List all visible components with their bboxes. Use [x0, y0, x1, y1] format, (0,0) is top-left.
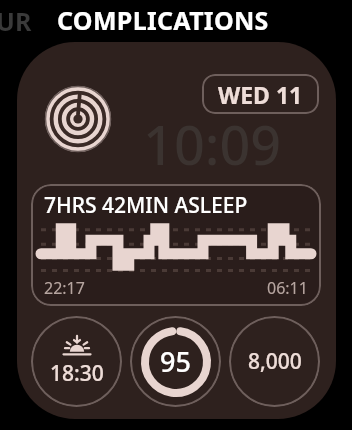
- staticText: 7HRS 42MIN ASLEEP: [44, 191, 248, 220]
- staticText: 06:11: [267, 277, 308, 299]
- button[interactable]: Activity spiral complication: [45, 86, 111, 152]
- button[interactable]: 7HRS 42MIN ASLEEP: [31, 184, 321, 306]
- staticText: 18:30: [50, 359, 104, 388]
- button[interactable]: 95: [130, 316, 221, 407]
- staticText: COMPLICATIONS: [57, 3, 269, 37]
- staticText: 95: [160, 343, 191, 380]
- button[interactable]: 18:30: [31, 316, 122, 407]
- button[interactable]: 8,000: [229, 316, 320, 407]
- staticText: 8,000: [248, 347, 302, 376]
- button[interactable]: WED 11: [202, 74, 319, 114]
- staticText: WED 11: [218, 79, 303, 110]
- staticText: 10:09: [143, 107, 282, 181]
- staticText: 22:17: [44, 277, 85, 299]
- staticText: UR: [0, 4, 32, 38]
